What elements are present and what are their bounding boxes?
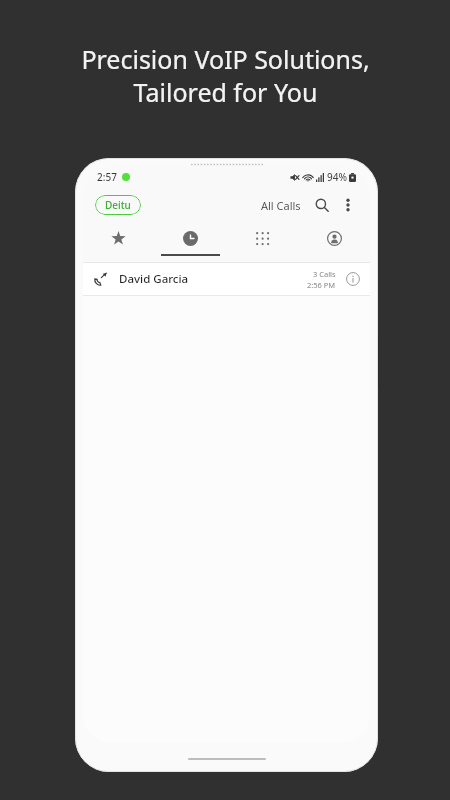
staticText: 2:56 PM	[307, 280, 336, 290]
staticText: All Calls	[261, 198, 301, 213]
button[interactable]: David Garcia	[83, 263, 370, 295]
button[interactable]: Recents	[154, 222, 226, 254]
staticText: 94%	[327, 170, 347, 184]
staticText: Deitu	[105, 198, 131, 212]
staticText: Precision VoIP Solutions, Tailored for Y…	[81, 42, 370, 109]
staticText: 2:57	[97, 170, 117, 184]
button[interactable]: Keypad	[226, 222, 298, 254]
button[interactable]: More options	[338, 195, 358, 215]
button[interactable]: Call details	[344, 270, 362, 288]
staticText: 3 Calls	[313, 269, 336, 279]
staticText: David Garcia	[119, 271, 189, 287]
button[interactable]: Favorites	[83, 222, 154, 254]
button[interactable]: Contacts	[298, 222, 370, 254]
button[interactable]: Search	[312, 195, 332, 215]
button[interactable]: Deitu	[95, 195, 141, 215]
button[interactable]: All Calls	[258, 194, 304, 217]
